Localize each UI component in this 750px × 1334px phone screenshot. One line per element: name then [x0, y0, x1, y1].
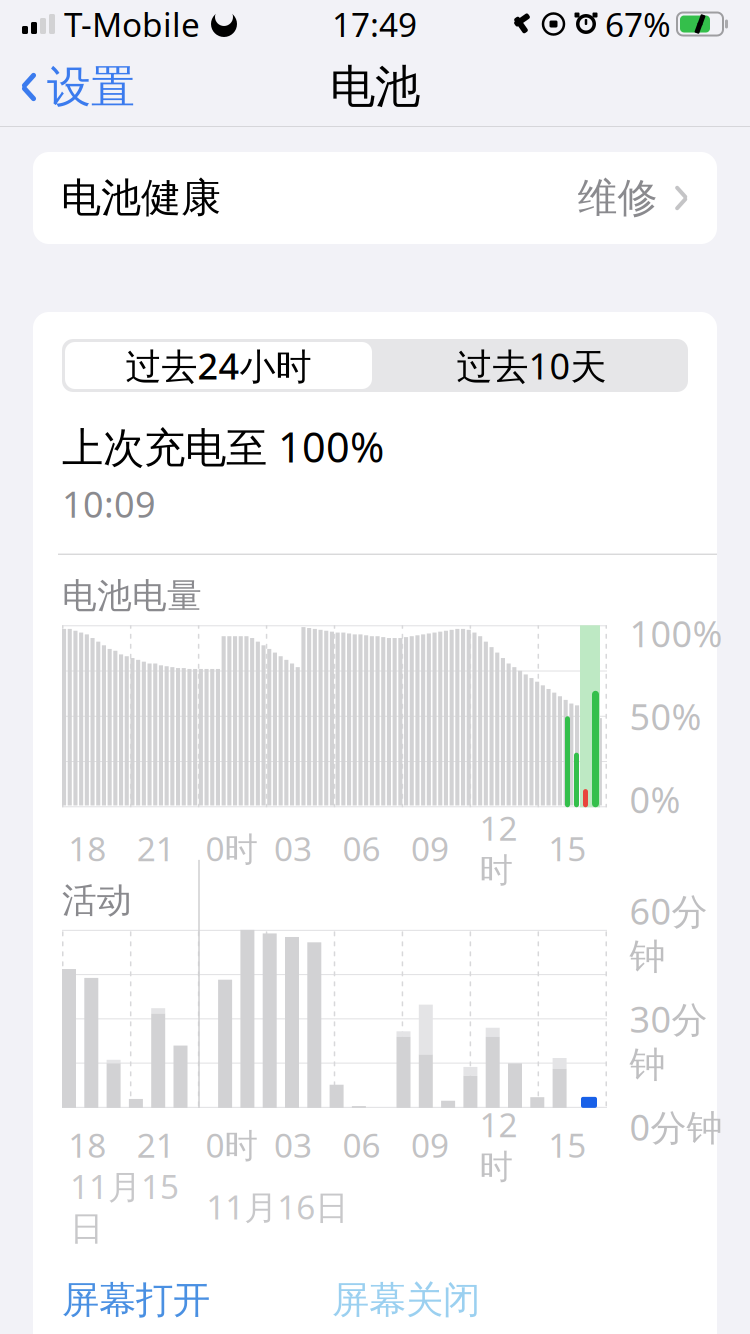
staticText: T-Mobile — [64, 2, 200, 46]
staticText: 12时 — [480, 806, 518, 891]
staticText: 15 — [548, 1123, 586, 1167]
staticText: 30分钟 — [629, 995, 707, 1087]
staticText: 03 — [274, 826, 312, 870]
staticText: 18 — [68, 826, 106, 870]
staticText: 67% — [605, 2, 671, 46]
staticText: 11月16日 — [206, 1184, 348, 1229]
staticText: 设置 — [47, 60, 135, 114]
staticText: 电池 — [330, 59, 420, 115]
staticText: 上次充电至 100% — [62, 419, 384, 474]
staticText: 15 — [548, 826, 586, 870]
staticText: 09 — [411, 1123, 449, 1167]
staticText: 17:49 — [332, 2, 417, 46]
staticText: 0时 — [205, 1123, 257, 1167]
staticText: 60分钟 — [629, 887, 707, 979]
staticText: 21 — [137, 1123, 175, 1167]
staticText: 10:09 — [62, 480, 156, 528]
staticText: 过去10天 — [456, 342, 606, 389]
staticText: 11月15日 — [70, 1164, 179, 1249]
staticText: 09 — [411, 826, 449, 870]
staticText: 维修 — [577, 173, 657, 222]
staticText: 06 — [342, 1123, 380, 1167]
staticText: 0% — [629, 775, 680, 823]
staticText: 100% — [629, 609, 722, 657]
staticText: 0时 — [205, 826, 257, 870]
button[interactable]: 过去10天 — [375, 339, 688, 392]
staticText: 屏幕打开 — [62, 1277, 210, 1323]
staticText: 18 — [68, 1123, 106, 1167]
staticText: 0分钟 — [629, 1103, 722, 1151]
staticText: 06 — [342, 826, 380, 870]
button[interactable]: 设置 — [0, 52, 155, 122]
staticText: 21 — [137, 826, 175, 870]
staticText: 50% — [629, 692, 701, 740]
staticText: 12时 — [480, 1102, 518, 1187]
button[interactable]: 过去24小时 — [62, 339, 375, 392]
staticText: 过去24小时 — [125, 342, 311, 389]
staticText: 屏幕关闭 — [332, 1277, 480, 1323]
staticText: 活动 — [62, 879, 132, 922]
staticText: 电池健康 — [61, 173, 221, 222]
button[interactable]: 电池健康 — [33, 152, 717, 244]
staticText: 03 — [274, 1123, 312, 1167]
staticText: 电池电量 — [62, 575, 202, 617]
